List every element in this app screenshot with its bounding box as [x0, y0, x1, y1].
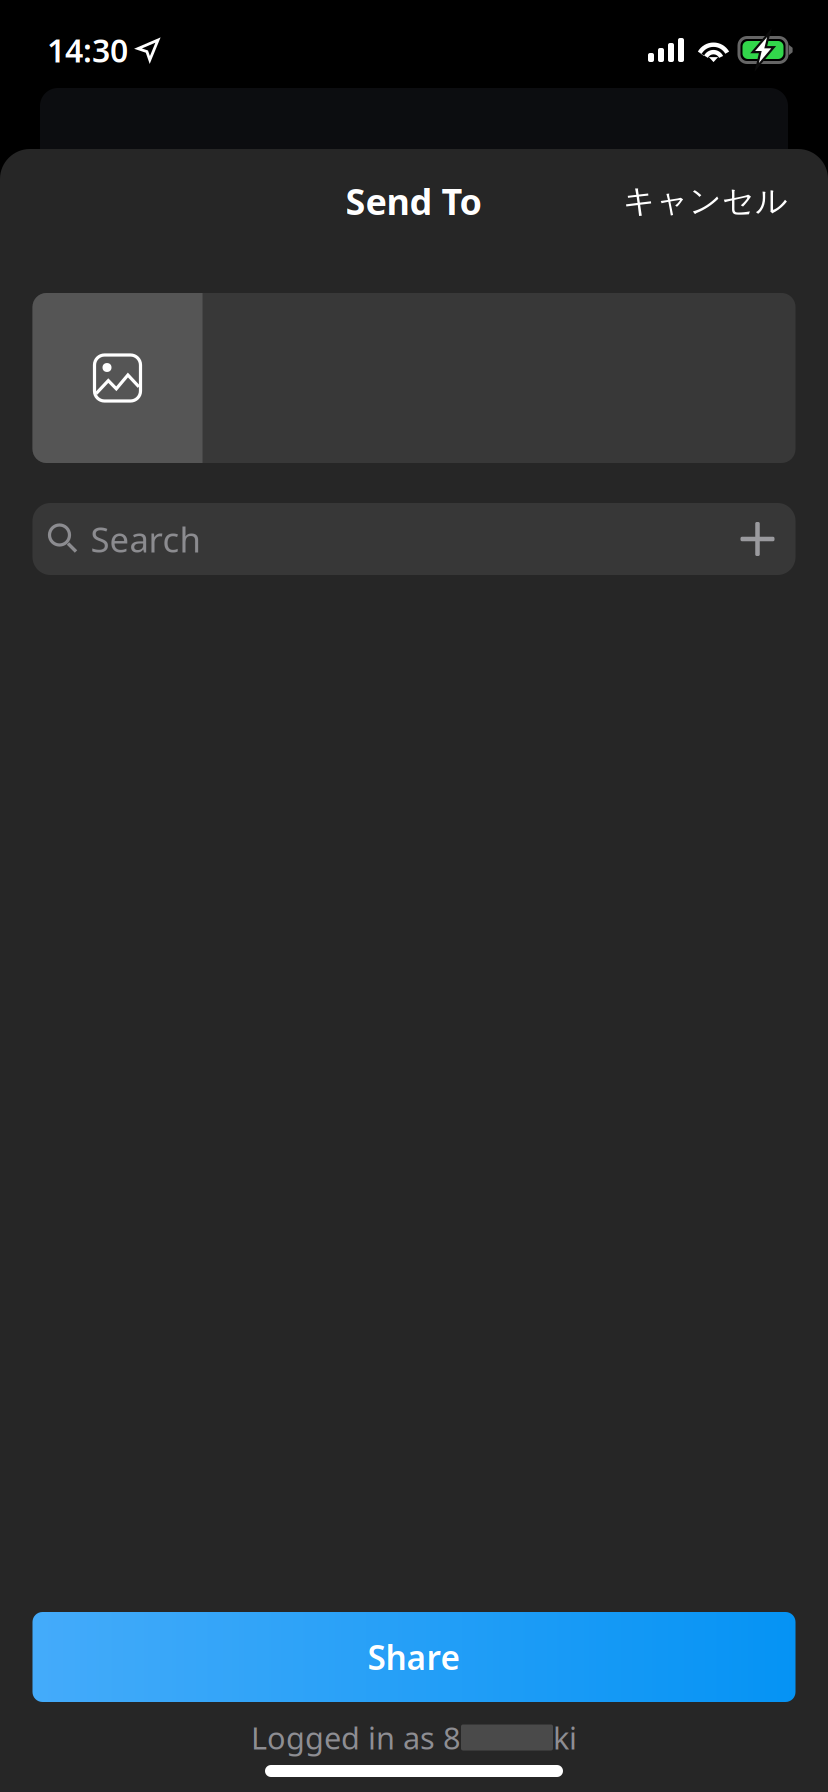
staticText: キャンセル [623, 181, 788, 221]
staticText: 14:30 [47, 29, 128, 71]
button[interactable]: Search [32, 503, 795, 575]
button[interactable]: Share [32, 1612, 795, 1702]
staticText: Send To [345, 177, 482, 225]
staticText: ki [553, 1717, 577, 1758]
staticText: Logged in as 8 [251, 1717, 461, 1758]
staticText: Share [367, 1635, 460, 1679]
button[interactable]: キャンセル [603, 165, 808, 237]
staticText: Search [90, 516, 200, 562]
